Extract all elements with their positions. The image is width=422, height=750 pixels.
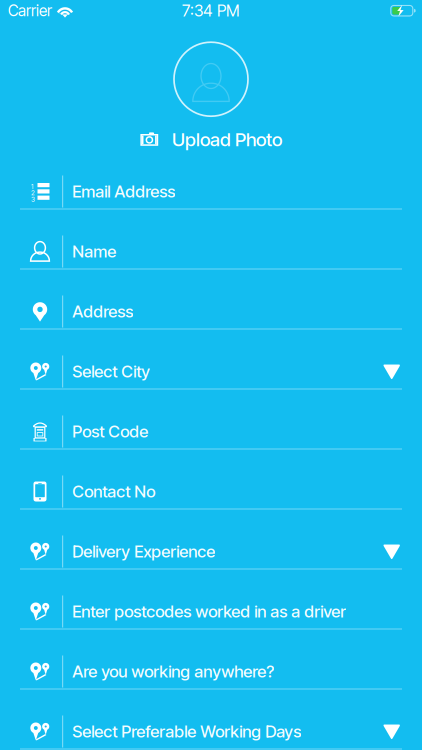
staticText: Post Code: [72, 421, 148, 442]
staticText: Contact No: [72, 481, 155, 502]
button[interactable]: Post Code: [0, 389, 422, 449]
staticText: 7:34 PM: [182, 1, 240, 20]
staticText: Select Preferable Working Days: [72, 721, 301, 742]
button[interactable]: Upload Photo: [134, 124, 288, 155]
button[interactable]: Enter postcodes worked in as a driver: [0, 569, 422, 629]
staticText: 2: [31, 189, 35, 197]
staticText: Name: [72, 241, 116, 262]
button[interactable]: Select City: [0, 329, 422, 389]
staticText: Upload Photo: [172, 128, 282, 151]
button[interactable]: Delivery Experience: [0, 509, 422, 569]
button[interactable]: Address: [0, 269, 422, 329]
staticText: 3: [31, 195, 35, 203]
button[interactable]: Name: [0, 209, 422, 269]
staticText: Enter postcodes worked in as a driver: [72, 601, 346, 622]
staticText: Email Address: [72, 181, 175, 202]
button[interactable]: Select Preferable Working Days: [0, 689, 422, 749]
staticText: Address: [72, 301, 133, 322]
staticText: Delivery Experience: [72, 541, 215, 562]
button[interactable]: Contact No: [0, 449, 422, 509]
staticText: Are you working anywhere?: [72, 661, 274, 682]
button[interactable]: Are you working anywhere?: [0, 629, 422, 689]
staticText: Select City: [72, 361, 150, 382]
staticText: 1: [31, 183, 33, 191]
button[interactable]: 1: [0, 149, 422, 209]
staticText: Carrier: [8, 1, 52, 20]
